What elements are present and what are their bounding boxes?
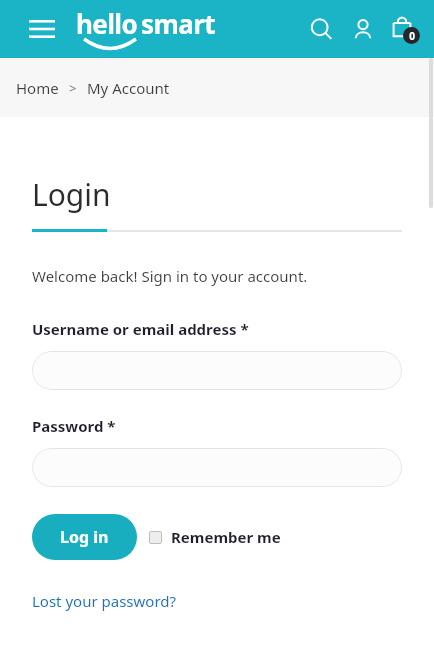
- button[interactable]: [32, 351, 402, 390]
- button[interactable]: Menu: [22, 9, 62, 49]
- button[interactable]: Search: [300, 8, 342, 50]
- staticText: hello: [76, 6, 138, 41]
- button[interactable]: Remember me: [149, 527, 281, 547]
- staticText: 0: [409, 29, 415, 43]
- staticText: Log in: [60, 526, 109, 548]
- staticText: Remember me: [171, 527, 281, 547]
- staticText: smart: [141, 6, 215, 41]
- button[interactable]: Cart, 0 items: [384, 8, 426, 50]
- staticText: Lost your password?: [32, 591, 177, 611]
- staticText: Welcome back! Sign in to your account.: [32, 266, 308, 286]
- staticText: My Account: [87, 78, 170, 98]
- staticText: Username or email address *: [32, 319, 249, 339]
- staticText: >: [69, 79, 77, 97]
- button[interactable]: hello: [76, 6, 215, 50]
- button[interactable]: Account: [342, 8, 384, 50]
- button[interactable]: [32, 448, 402, 487]
- button[interactable]: Log in: [32, 514, 137, 560]
- staticText: Password *: [32, 416, 116, 436]
- staticText: Login: [32, 174, 111, 215]
- button[interactable]: Lost your password?: [32, 591, 177, 611]
- button[interactable]: Home: [16, 78, 59, 98]
- staticText: Home: [16, 78, 59, 98]
